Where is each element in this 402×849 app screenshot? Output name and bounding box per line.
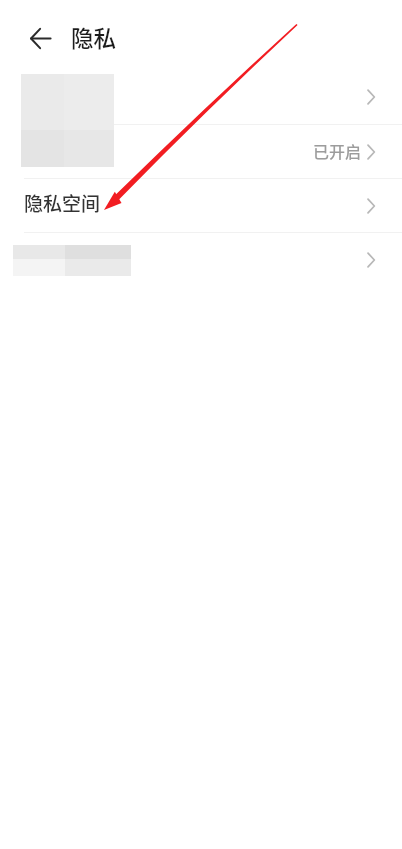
button[interactable]: 更多隐私设置 [0, 233, 402, 287]
staticText: 隐私 [71, 21, 117, 54]
staticText: 隐私空间 [24, 189, 101, 217]
staticText: 已开启 [313, 139, 362, 162]
button[interactable]: 权限管理 [0, 70, 402, 124]
button[interactable]: 隐私空间 [0, 179, 402, 232]
button[interactable]: 定位服务 [0, 125, 402, 178]
button[interactable]: Back [21, 19, 59, 57]
